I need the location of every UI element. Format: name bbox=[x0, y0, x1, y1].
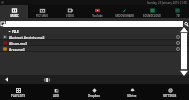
button[interactable]: More options bbox=[175, 46, 181, 51]
button[interactable]: GDrive bbox=[113, 84, 151, 100]
button[interactable]: SETTINGS bbox=[151, 84, 189, 100]
staticText: GDrive bbox=[127, 94, 137, 98]
staticText: 7D bbox=[176, 14, 180, 17]
button[interactable]: Alison.mp3 bbox=[0, 40, 189, 45]
button[interactable]: Recent apps bbox=[43, 76, 50, 83]
button[interactable]: More options bbox=[175, 40, 181, 45]
staticText: SETTINGS bbox=[163, 94, 177, 98]
staticText: ADD bbox=[53, 94, 60, 98]
button[interactable]: ADD bbox=[37, 84, 75, 100]
staticText: SOUNDCLOUD bbox=[143, 14, 161, 17]
staticText: Abstract Anxiety.mp3 bbox=[9, 35, 45, 39]
staticText: Alison.mp3 bbox=[9, 41, 28, 45]
button[interactable]: PICTURES bbox=[28, 5, 56, 18]
button[interactable]: Area.mp3 bbox=[0, 46, 189, 51]
staticText: GROOVESHARK bbox=[115, 14, 134, 17]
staticText: YouTube bbox=[92, 14, 103, 17]
staticText: VIDEO bbox=[66, 14, 74, 17]
staticText: Area.mp3 bbox=[9, 47, 25, 51]
button[interactable]: 7D bbox=[165, 5, 189, 18]
button[interactable]: Back bbox=[3, 76, 10, 83]
button[interactable]: Dropbox bbox=[75, 84, 113, 100]
button[interactable]: PLAYLISTS bbox=[0, 84, 37, 100]
button[interactable]: More options bbox=[175, 34, 181, 39]
button[interactable]: VIDEO bbox=[56, 5, 84, 18]
button[interactable]: SOUNDCLOUD bbox=[138, 5, 165, 18]
staticText: FILE bbox=[12, 29, 19, 33]
button[interactable]: Abstract Anxiety.mp3 bbox=[0, 34, 189, 39]
button[interactable]: YouTube bbox=[84, 5, 111, 18]
staticText: Dropbox bbox=[88, 94, 100, 98]
button[interactable]: Search bbox=[183, 21, 189, 27]
staticText: PLAYLISTS bbox=[11, 94, 26, 98]
button[interactable]: MUSIC bbox=[0, 5, 28, 18]
staticText: PICTURES bbox=[36, 14, 48, 17]
staticText: MUSIC bbox=[10, 14, 19, 17]
button[interactable]: Up one level bbox=[0, 21, 6, 27]
button[interactable]: FILE bbox=[0, 28, 189, 34]
staticText: Sunday, 25 January 2015 21:05 bbox=[147, 1, 187, 5]
button[interactable]: GROOVESHARK bbox=[111, 5, 138, 18]
